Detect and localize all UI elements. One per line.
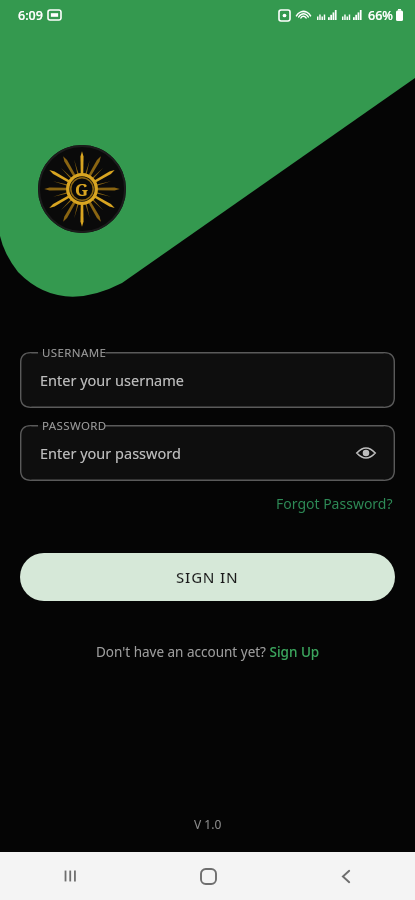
staticText: Forgot Password?	[276, 494, 393, 513]
staticText: 6:09	[18, 7, 43, 24]
button[interactable]: PASSWORD	[20, 425, 395, 481]
staticText: 66%	[368, 7, 393, 24]
staticText: Enter your username	[40, 370, 184, 390]
staticText: G	[75, 178, 89, 201]
button[interactable]: Back	[277, 852, 415, 900]
staticText: Don't have an account yet? Sign Up	[96, 643, 320, 661]
staticText: Enter your password	[40, 443, 181, 463]
button[interactable]: Recents	[0, 852, 139, 900]
staticText: SIGN IN	[176, 567, 239, 587]
staticText: PASSWORD	[42, 418, 107, 434]
button[interactable]: Don't have an account yet? Sign Up	[20, 643, 395, 661]
button[interactable]: SIGN IN	[20, 553, 395, 601]
button[interactable]: USERNAME	[20, 352, 395, 408]
button[interactable]: Show password	[353, 440, 379, 466]
staticText: V 1.0	[194, 816, 222, 832]
button[interactable]: Forgot Password?	[274, 492, 395, 515]
staticText: USERNAME	[42, 345, 107, 361]
button[interactable]: Home	[139, 852, 277, 900]
